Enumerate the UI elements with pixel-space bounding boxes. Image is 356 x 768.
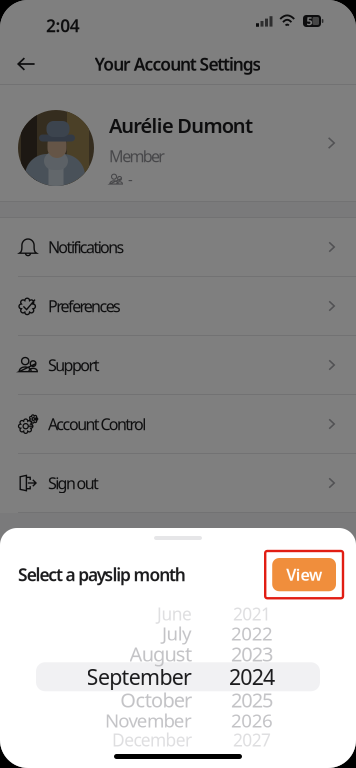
staticText: View xyxy=(286,564,322,585)
staticText: 2026 xyxy=(231,708,273,733)
staticText: Support xyxy=(48,354,100,376)
staticText: - xyxy=(128,170,133,189)
button[interactable]: Notifications xyxy=(0,218,356,276)
staticText: December xyxy=(112,728,192,751)
staticText: July xyxy=(162,621,192,646)
staticText: 2027 xyxy=(233,728,271,751)
button[interactable]: Preferences xyxy=(0,277,356,335)
staticText: Member xyxy=(109,145,165,167)
staticText: 2025 xyxy=(231,686,273,713)
staticText: 2022 xyxy=(231,621,273,646)
staticText: August xyxy=(129,640,192,667)
button[interactable]: Sign out xyxy=(0,454,356,512)
staticText: September xyxy=(87,663,192,691)
staticText: Sign out xyxy=(48,472,99,494)
staticText: October xyxy=(120,686,192,713)
button[interactable]: Aurélie Dumont xyxy=(0,85,356,201)
staticText: Select a payslip month xyxy=(18,563,186,586)
staticText: Notifications xyxy=(48,236,125,258)
button[interactable]: Support xyxy=(0,336,356,394)
staticText: Your Account Settings xyxy=(94,52,261,75)
staticText: 2:04 xyxy=(46,14,80,37)
staticText: November xyxy=(105,708,192,733)
staticText: 5 xyxy=(306,14,312,28)
staticText: 2024 xyxy=(229,663,275,691)
staticText: 2023 xyxy=(231,640,273,667)
staticText: Account Control xyxy=(48,413,146,435)
staticText: Aurélie Dumont xyxy=(109,112,253,138)
staticText: 2021 xyxy=(233,602,271,625)
button[interactable]: Account Control xyxy=(0,395,356,453)
staticText: Preferences xyxy=(48,295,121,317)
staticText: June xyxy=(157,602,192,625)
button[interactable]: View xyxy=(265,551,343,598)
button[interactable]: Back xyxy=(0,44,50,83)
